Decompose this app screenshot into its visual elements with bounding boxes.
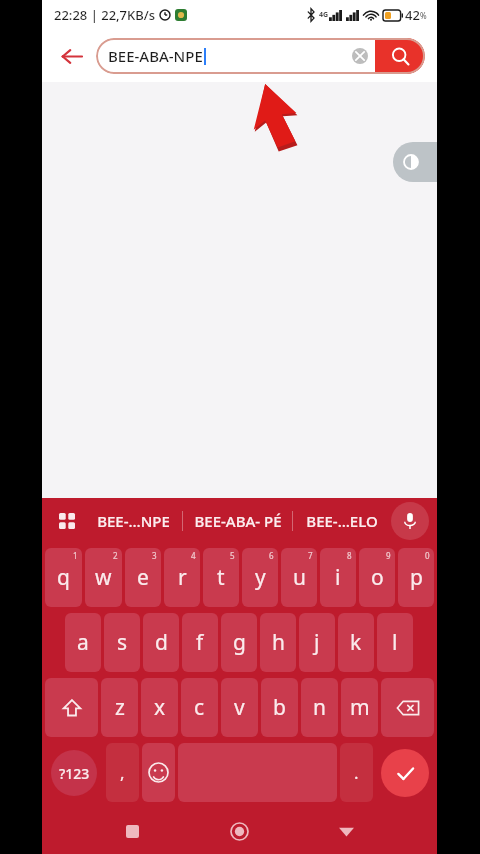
button[interactable]: d — [143, 613, 179, 672]
button[interactable]: Brightness widget — [393, 142, 437, 182]
staticText: z — [115, 693, 125, 722]
staticText: v — [234, 693, 245, 722]
staticText: BEE-ABA- PÉ — [194, 511, 282, 531]
staticText: j — [314, 628, 320, 657]
staticText: 0 — [425, 550, 430, 561]
staticText: . — [354, 761, 359, 784]
staticText: d — [155, 628, 168, 657]
staticText: i — [335, 563, 341, 592]
button[interactable]: Back — [52, 37, 90, 75]
staticText: 42 — [405, 6, 420, 24]
staticText: l — [392, 628, 398, 657]
staticText: e — [137, 563, 149, 592]
staticText: 3 — [152, 550, 157, 561]
staticText: 1 — [73, 550, 78, 561]
staticText: s — [117, 628, 128, 657]
button[interactable]: z — [101, 678, 138, 737]
button[interactable]: t — [203, 548, 239, 607]
button[interactable]: BEE-…ELO — [293, 498, 391, 544]
button[interactable]: k — [338, 613, 374, 672]
button[interactable]: w — [85, 548, 122, 607]
staticText: 7 — [308, 550, 313, 561]
button[interactable]: g — [221, 613, 257, 672]
button[interactable]: y — [242, 548, 278, 607]
staticText: h — [272, 628, 285, 657]
button[interactable]: BEE-ABA- PÉ — [183, 498, 292, 544]
button[interactable]: Recents — [110, 809, 154, 853]
button[interactable]: e — [125, 548, 161, 607]
staticText: 4 — [191, 550, 196, 561]
button[interactable]: . — [340, 743, 373, 802]
staticText: a — [77, 628, 89, 657]
staticText: g — [233, 628, 246, 657]
button[interactable]: m — [341, 678, 378, 737]
staticText: 6 — [269, 550, 274, 561]
staticText: f — [196, 628, 204, 657]
button[interactable]: s — [104, 613, 140, 672]
button[interactable]: a — [65, 613, 101, 672]
staticText: 22:28 | 22,7KB/s — [54, 6, 156, 24]
button[interactable]: Clear text — [345, 41, 375, 71]
button[interactable]: p — [398, 548, 434, 607]
staticText: x — [154, 693, 166, 722]
button[interactable]: b — [261, 678, 298, 737]
staticText: b — [273, 693, 286, 722]
staticText: 5 — [230, 550, 235, 561]
staticText: ?123 — [59, 764, 90, 783]
button[interactable]: Home — [217, 809, 261, 853]
button[interactable]: Voice input — [391, 502, 429, 540]
staticText: BEE-…NPE — [97, 511, 170, 531]
button[interactable]: u — [281, 548, 317, 607]
button[interactable]: x — [141, 678, 178, 737]
button[interactable]: c — [181, 678, 218, 737]
staticText: n — [313, 693, 326, 722]
button[interactable]: f — [182, 613, 218, 672]
staticText: t — [217, 563, 225, 592]
staticText: BEE-ABA-NPE — [108, 46, 203, 66]
staticText: 9 — [386, 550, 391, 561]
staticText: % — [420, 10, 427, 21]
staticText: q — [57, 563, 70, 592]
button[interactable]: Keyboard menu — [50, 504, 84, 538]
staticText: u — [293, 563, 306, 592]
staticText: p — [410, 563, 423, 592]
button[interactable]: v — [221, 678, 258, 737]
staticText: m — [350, 693, 370, 722]
button[interactable]: o — [359, 548, 395, 607]
button[interactable]: r — [164, 548, 200, 607]
button[interactable]: BEE-…NPE — [84, 498, 182, 544]
staticText: c — [194, 693, 205, 722]
button[interactable]: Shift — [45, 678, 98, 737]
button[interactable]: Backspace — [381, 678, 434, 737]
button[interactable]: n — [301, 678, 338, 737]
staticText: , — [120, 761, 125, 784]
button[interactable]: Hide keyboard — [324, 809, 368, 853]
staticText: 2 — [113, 550, 118, 561]
button[interactable]: j — [299, 613, 335, 672]
button[interactable]: BEE-ABA-NPE — [96, 38, 425, 74]
staticText: o — [371, 563, 384, 592]
button[interactable]: , — [106, 743, 139, 802]
button[interactable]: Enter — [376, 743, 434, 802]
staticText: r — [178, 563, 187, 592]
staticText: y — [255, 563, 266, 592]
button[interactable]: q — [45, 548, 82, 607]
button[interactable]: Search — [375, 38, 425, 74]
staticText: BEE-…ELO — [306, 511, 378, 531]
button[interactable]: ?123 — [45, 743, 103, 802]
button[interactable]: l — [377, 613, 413, 672]
button[interactable]: h — [260, 613, 296, 672]
staticText: 4G — [319, 10, 329, 20]
staticText: 8 — [347, 550, 352, 561]
staticText: w — [95, 563, 112, 592]
staticText: k — [350, 628, 362, 657]
button[interactable]: i — [320, 548, 356, 607]
button[interactable]: Emoji — [142, 743, 175, 802]
